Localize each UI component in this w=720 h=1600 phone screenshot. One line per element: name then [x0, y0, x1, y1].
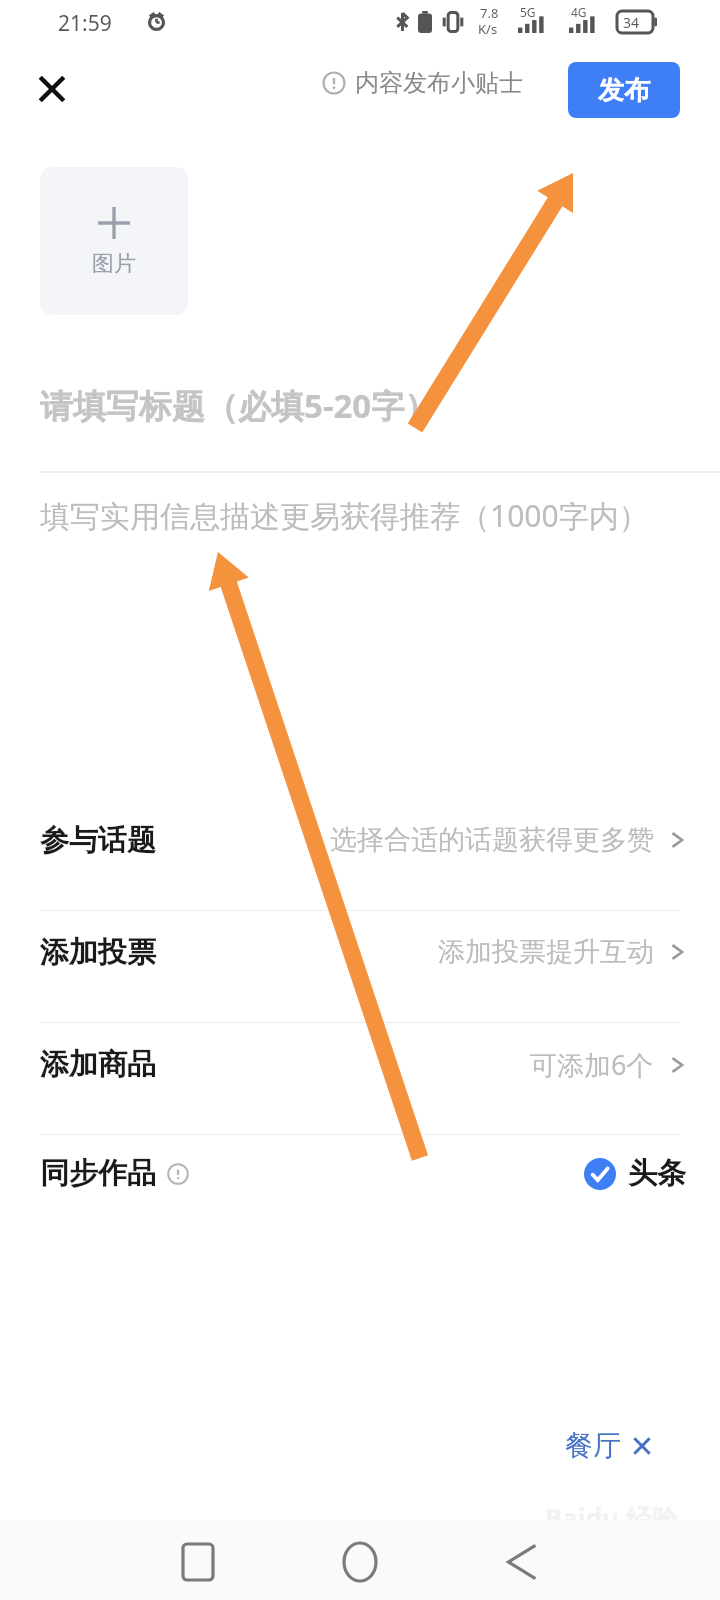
- staticText: 4G: [571, 4, 587, 20]
- button[interactable]: 同步作品: [0, 1133, 720, 1213]
- staticText: 内容发布小贴士: [355, 68, 523, 98]
- button[interactable]: Home: [332, 1534, 388, 1590]
- staticText: 图片: [92, 250, 136, 278]
- staticText: 发布: [598, 74, 650, 107]
- button[interactable]: Close: [22, 59, 82, 119]
- staticText: 添加投票: [40, 934, 156, 971]
- button[interactable]: 添加投票: [0, 909, 720, 995]
- staticText: 可添加6个: [530, 1046, 654, 1083]
- staticText: 34: [623, 13, 640, 32]
- staticText: 21:59: [58, 9, 112, 38]
- staticText: 餐厅: [565, 1428, 621, 1463]
- button[interactable]: Back: [494, 1534, 550, 1590]
- staticText: 7.8: [480, 4, 499, 22]
- staticText: 添加投票提升互动: [438, 935, 654, 969]
- staticText: 同步作品: [40, 1155, 156, 1192]
- button[interactable]: 发布: [568, 62, 680, 118]
- button[interactable]: 添加商品: [0, 1021, 720, 1107]
- button[interactable]: 头条: [584, 1155, 686, 1192]
- button[interactable]: 餐厅: [565, 1428, 653, 1463]
- staticText: 参与话题: [40, 822, 156, 859]
- staticText: 选择合适的话题获得更多赞: [330, 823, 654, 857]
- staticText: 5G: [520, 4, 536, 20]
- button[interactable]: 请填写标题（必填5-20字）: [40, 383, 680, 428]
- staticText: K/s: [478, 20, 498, 38]
- other: Remove tag: [631, 1435, 653, 1457]
- staticText: 添加商品: [40, 1046, 156, 1083]
- button[interactable]: 内容发布小贴士: [322, 68, 523, 98]
- button[interactable]: Recents: [170, 1534, 226, 1590]
- staticText: Baidu 经验: [545, 1500, 678, 1536]
- staticText: 头条: [628, 1155, 686, 1192]
- button[interactable]: 图片: [40, 167, 188, 315]
- button[interactable]: 参与话题: [0, 797, 720, 883]
- button[interactable]: 填写实用信息描述更易获得推荐（1000字内）: [40, 495, 655, 536]
